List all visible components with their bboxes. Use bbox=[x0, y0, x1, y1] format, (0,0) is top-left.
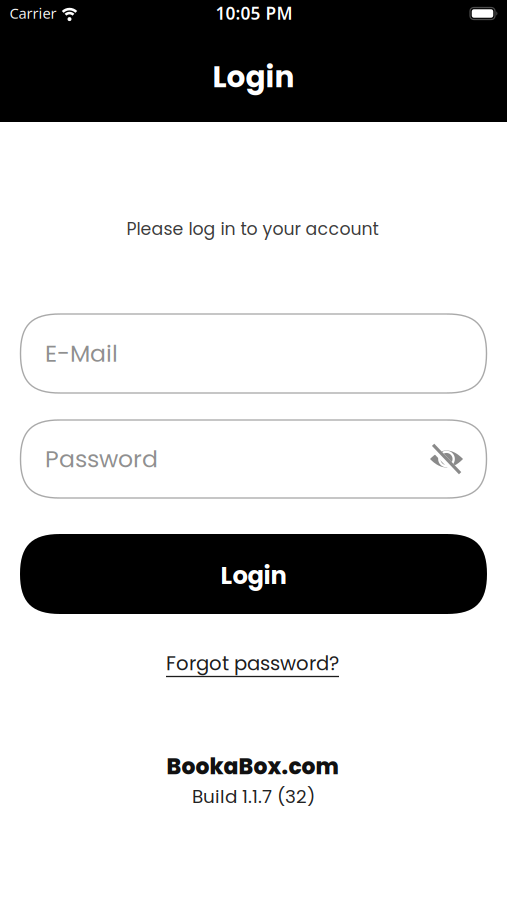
staticText: Carrier bbox=[9, 3, 56, 23]
staticText: Forgot password? bbox=[166, 650, 339, 677]
button[interactable]: Login bbox=[20, 534, 487, 614]
staticText: Login bbox=[212, 56, 294, 98]
staticText: Password bbox=[45, 442, 158, 475]
staticText: 10:05 PM bbox=[215, 1, 292, 24]
button[interactable]: Password bbox=[20, 420, 486, 498]
button[interactable]: Forgot password? bbox=[166, 650, 339, 677]
staticText: Please log in to your account bbox=[126, 217, 378, 241]
button[interactable]: E-Mail bbox=[20, 314, 486, 393]
button[interactable]: Show password bbox=[428, 442, 464, 476]
staticText: Login bbox=[220, 558, 286, 592]
staticText: Build 1.1.7 (32) bbox=[192, 784, 315, 809]
staticText: E-Mail bbox=[45, 337, 118, 370]
staticText: BookaBox.com bbox=[166, 751, 338, 782]
